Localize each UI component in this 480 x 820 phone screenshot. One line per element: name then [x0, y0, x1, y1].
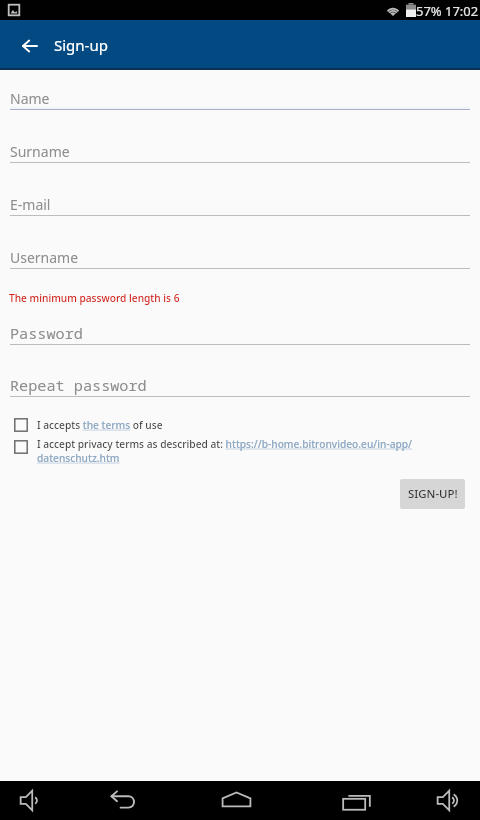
button[interactable]: Back	[8, 24, 52, 68]
staticText: Sign-up	[54, 35, 108, 55]
button[interactable]: I accept privacy terms as described at: …	[0, 437, 480, 471]
staticText: Username	[10, 248, 79, 267]
staticText: I accepts the terms of use	[37, 418, 163, 432]
staticText: SIGN-UP!	[408, 486, 458, 502]
button[interactable]: I accepts the terms of use	[0, 415, 480, 435]
button[interactable]: Recents	[325, 781, 387, 820]
staticText: E-mail	[10, 195, 51, 214]
staticText: Name	[10, 89, 50, 108]
staticText: Password	[10, 323, 83, 344]
staticText: The minimum password length is 6	[9, 291, 180, 305]
staticText: 57%	[416, 2, 442, 20]
button[interactable]: Volume up	[417, 781, 477, 820]
button[interactable]: Volume down	[0, 781, 60, 820]
staticText: Surname	[10, 142, 70, 161]
staticText: 17:02	[445, 2, 479, 20]
button[interactable]: Home	[205, 781, 267, 820]
staticText: I accept privacy terms as described at: …	[37, 437, 472, 465]
button[interactable]: Back	[90, 781, 152, 820]
staticText: Repeat password	[10, 375, 147, 396]
button[interactable]: SIGN-UP!	[400, 479, 465, 509]
